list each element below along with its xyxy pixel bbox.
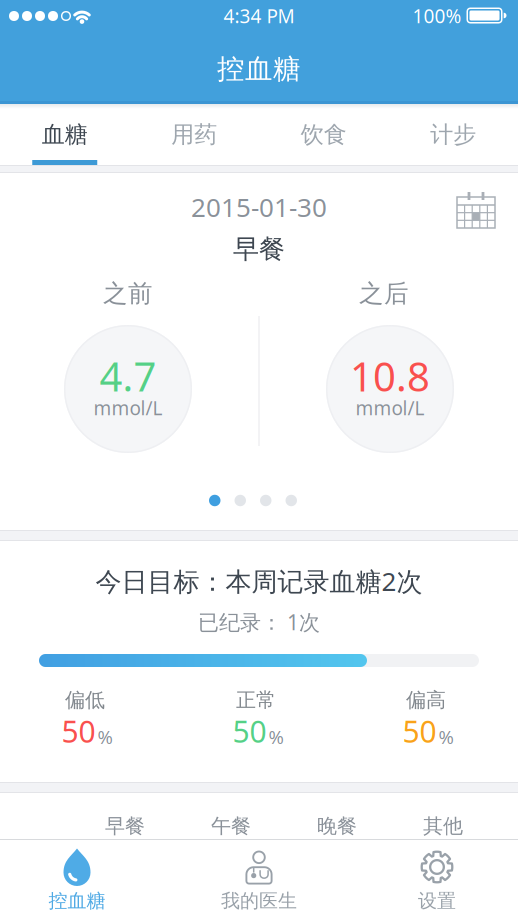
staticText: %	[97, 724, 112, 749]
staticText: 4:34 PM	[223, 3, 294, 29]
button[interactable]: 设置	[377, 840, 497, 920]
staticText: 10.8	[350, 349, 430, 403]
button[interactable]: 选择日期	[454, 188, 498, 232]
button[interactable]: 控血糖	[17, 840, 137, 920]
staticText: 用药	[171, 120, 217, 149]
staticText: 50	[232, 711, 266, 751]
staticText: 控血糖	[217, 52, 301, 86]
staticText: 50	[402, 711, 436, 751]
staticText: %	[268, 724, 283, 749]
staticText: 4.7	[99, 349, 156, 403]
staticText: 控血糖	[48, 889, 105, 913]
button[interactable]: 计步	[388, 104, 518, 165]
staticText: 偏高	[406, 687, 446, 713]
staticText: 2015-01-30	[191, 189, 327, 225]
staticText: 其他	[423, 813, 463, 839]
button[interactable]: 饮食	[259, 104, 388, 165]
staticText: 饮食	[301, 120, 347, 149]
staticText: 今日目标：本周记录血糖2次	[95, 563, 422, 599]
staticText: 100%	[412, 3, 461, 29]
staticText: 计步	[430, 120, 476, 149]
staticText: 设置	[418, 889, 456, 913]
staticText: 我的医生	[221, 889, 297, 913]
button[interactable]: 血糖	[0, 104, 129, 165]
button[interactable]: 其他	[398, 809, 488, 843]
staticText: mmol/L	[93, 395, 162, 421]
button[interactable]: 2015-01-30	[109, 187, 409, 227]
button[interactable]: 午餐	[186, 809, 276, 843]
button[interactable]: 我的医生	[199, 840, 319, 920]
staticText: 之前	[103, 278, 153, 309]
staticText: 早餐	[233, 233, 285, 265]
staticText: 50	[61, 711, 95, 751]
staticText: 偏低	[65, 687, 105, 713]
button[interactable]: 晚餐	[292, 809, 382, 843]
staticText: 正常	[236, 687, 276, 713]
button[interactable]: 用药	[129, 104, 259, 165]
staticText: 午餐	[211, 813, 251, 839]
staticText: 晚餐	[317, 813, 357, 839]
staticText: 血糖	[42, 120, 88, 149]
staticText: 之后	[359, 278, 409, 309]
staticText: %	[438, 724, 453, 749]
staticText: 早餐	[105, 813, 145, 839]
staticText: 已纪录： 1次	[198, 608, 320, 636]
staticText: mmol/L	[355, 395, 424, 421]
button[interactable]: 早餐	[80, 809, 170, 843]
